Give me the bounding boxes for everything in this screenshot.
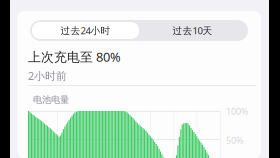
staticText: 2小时前 xyxy=(28,68,67,83)
staticText: 50% xyxy=(226,134,244,146)
staticText: 电池电量 xyxy=(33,94,69,106)
staticText: 100% xyxy=(226,105,249,117)
staticText: 过去24小时 xyxy=(60,24,110,37)
button[interactable]: 过去10天 xyxy=(139,22,246,39)
button[interactable]: 过去24小时 xyxy=(32,22,139,39)
staticText: 过去10天 xyxy=(172,24,212,37)
staticText: 上次充电至 80% xyxy=(28,48,121,65)
